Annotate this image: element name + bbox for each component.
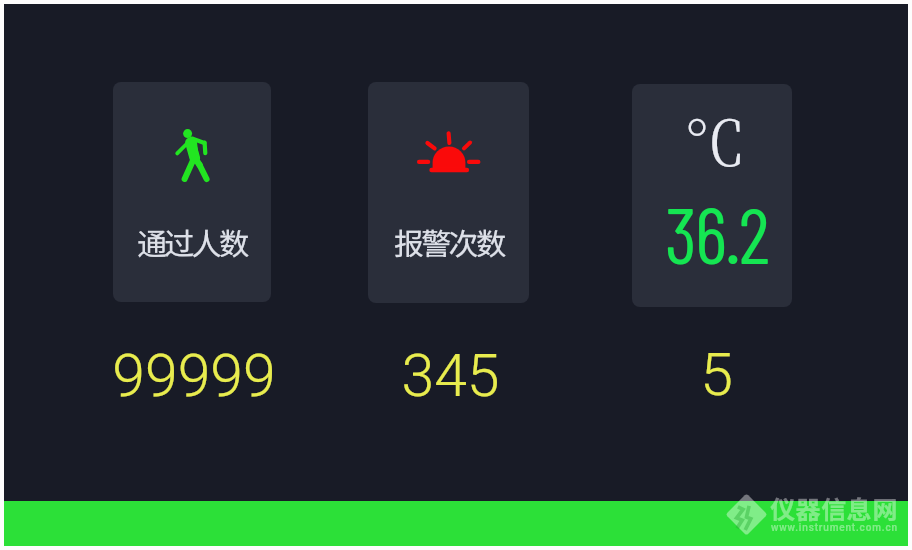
button[interactable]: Pedestrian count [113, 82, 271, 302]
button[interactable]: ℃ [632, 84, 792, 307]
staticText: 通过人数 [137, 220, 247, 263]
staticText: 345 [401, 341, 500, 410]
staticText: 仪器信息网 [770, 490, 899, 526]
button[interactable]: Alarm count [368, 82, 529, 303]
staticText: 99999 [112, 341, 276, 410]
staticText: www.instrument.com.cn [771, 522, 898, 534]
staticText: ℃ [684, 95, 747, 184]
staticText: 36.2 [665, 186, 769, 280]
other: Alarm count [414, 130, 480, 173]
staticText: 5 [700, 340, 733, 409]
other: Pedestrian count [174, 128, 210, 182]
staticText: 报警次数 [394, 220, 504, 263]
